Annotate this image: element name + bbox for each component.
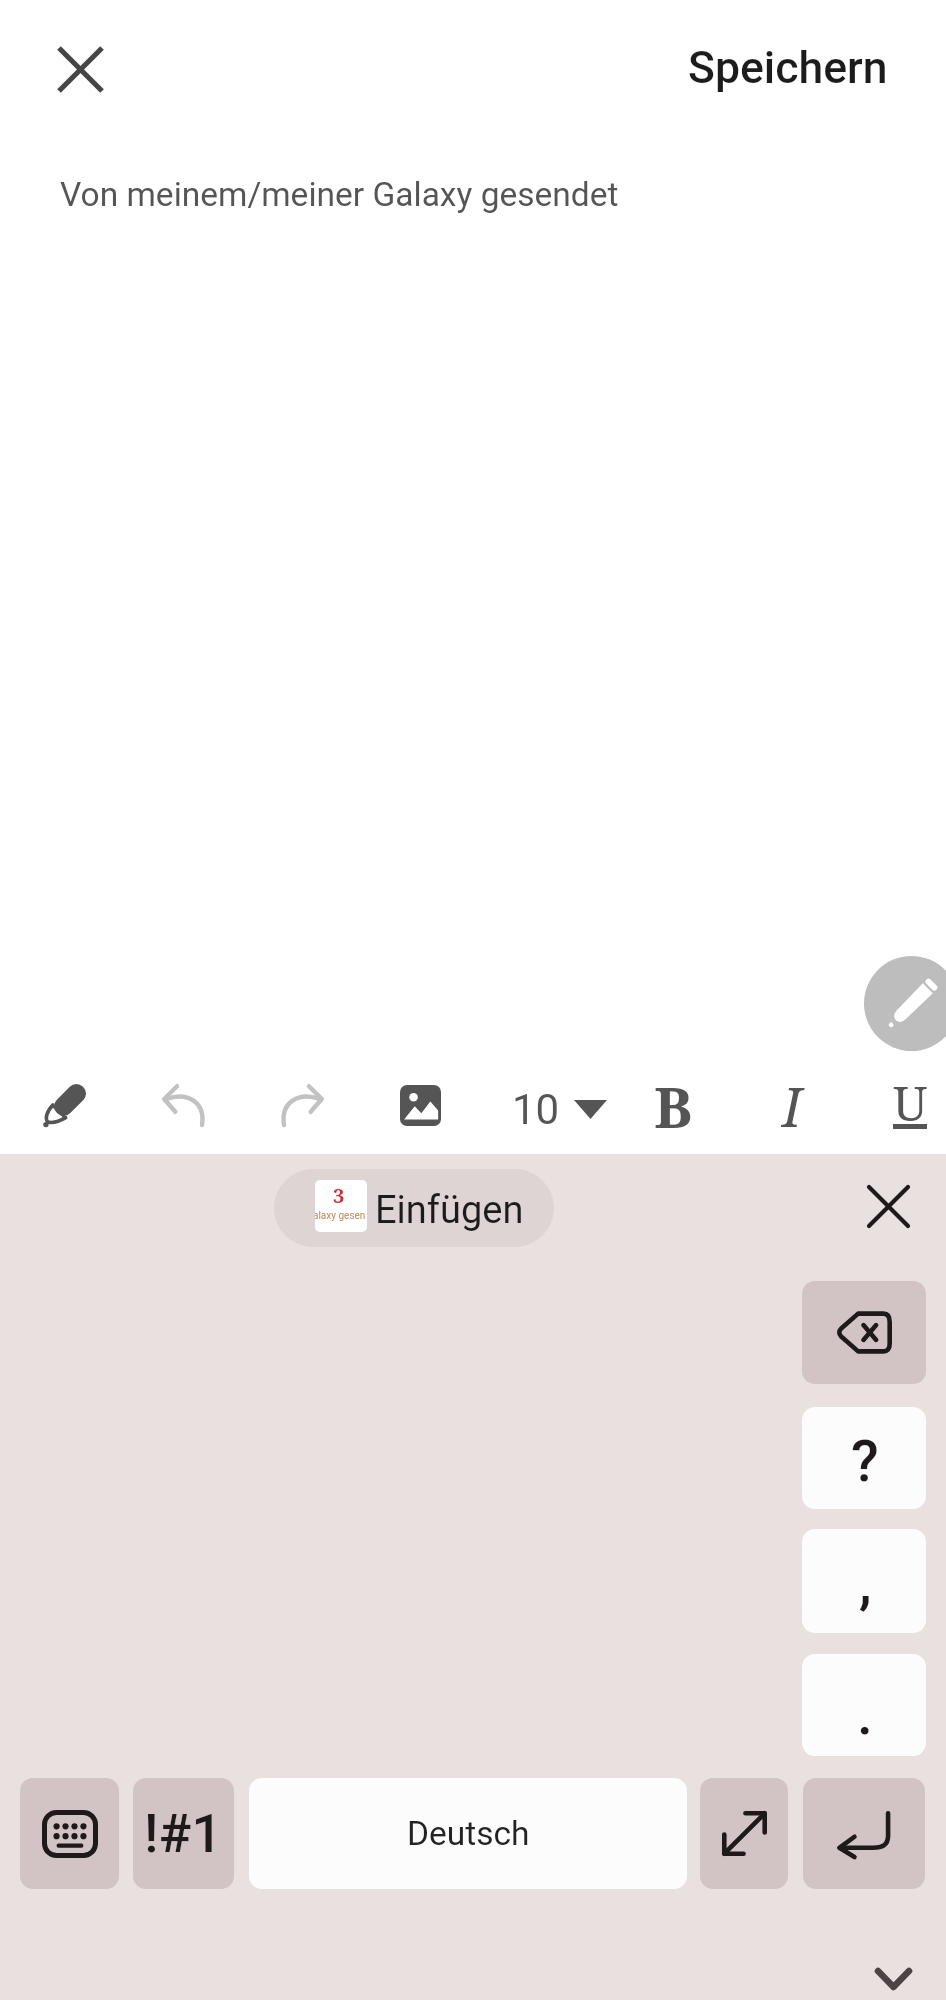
button[interactable]: Collapse keyboard: [857, 1943, 929, 2000]
button[interactable]: Backspace: [802, 1281, 926, 1384]
button[interactable]: Symbols: [133, 1778, 234, 1889]
staticText: Einfügen: [375, 1188, 524, 1233]
button[interactable]: Close suggestion: [846, 1164, 931, 1249]
button[interactable]: Font size: [509, 1064, 609, 1154]
staticText: 10: [512, 1085, 560, 1134]
staticText: 3: [333, 1182, 345, 1209]
button[interactable]: Insert image: [376, 1060, 464, 1150]
button[interactable]: Undo: [139, 1060, 227, 1150]
staticText: B: [654, 1067, 693, 1145]
staticText: Speichern: [688, 42, 888, 94]
button[interactable]: Pen: [21, 1060, 109, 1150]
staticText: !#1: [144, 1802, 223, 1865]
button[interactable]: Bold: [629, 1060, 717, 1150]
button[interactable]: Space — Deutsch: [249, 1778, 687, 1889]
button[interactable]: Comma: [802, 1529, 926, 1633]
button[interactable]: Speichern: [660, 19, 915, 117]
staticText: ,: [859, 1550, 872, 1617]
staticText: alaxy gesen: [315, 1210, 365, 1222]
button[interactable]: Handwriting pen: [864, 956, 946, 1051]
button[interactable]: Redo: [258, 1060, 346, 1150]
button[interactable]: Question mark: [802, 1407, 926, 1509]
button[interactable]: Underline: [866, 1060, 946, 1150]
staticText: Deutsch: [407, 1814, 530, 1853]
staticText: U: [893, 1070, 928, 1135]
staticText: I: [782, 1069, 802, 1143]
staticText: ?: [851, 1428, 879, 1495]
button[interactable]: Italic: [748, 1060, 836, 1150]
staticText: .: [857, 1681, 873, 1748]
button[interactable]: Resize keyboard: [700, 1778, 788, 1889]
staticText: Von meinem/meiner Galaxy gesendet: [60, 175, 619, 214]
button[interactable]: Hide keyboard: [20, 1778, 119, 1889]
button[interactable]: Enter: [803, 1778, 925, 1889]
button[interactable]: 3: [274, 1169, 554, 1247]
button[interactable]: Close: [28, 17, 132, 121]
button[interactable]: Period: [802, 1654, 926, 1756]
